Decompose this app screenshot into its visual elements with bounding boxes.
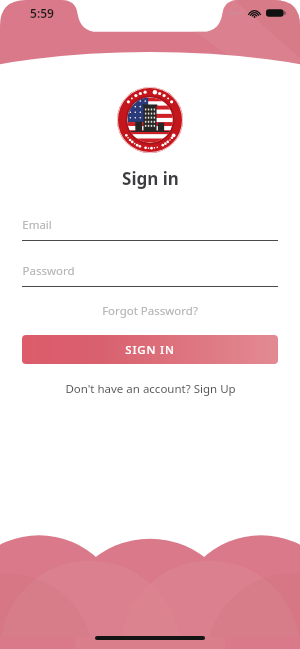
staticText: Sign in	[122, 167, 179, 190]
staticText: Password	[22, 263, 75, 279]
button[interactable]: Don't have an account? Sign Up	[0, 378, 300, 400]
button[interactable]: Email	[22, 214, 278, 241]
staticText: Don't have an account? Sign Up	[65, 381, 236, 397]
staticText: Email	[22, 217, 52, 233]
staticText: 5:59	[30, 5, 54, 21]
button[interactable]: Forgot Password?	[0, 300, 300, 322]
button[interactable]: Password	[22, 260, 278, 287]
staticText: SIGN IN	[125, 342, 175, 358]
staticText: Forgot Password?	[102, 303, 198, 319]
button[interactable]: SIGN IN	[22, 335, 278, 364]
